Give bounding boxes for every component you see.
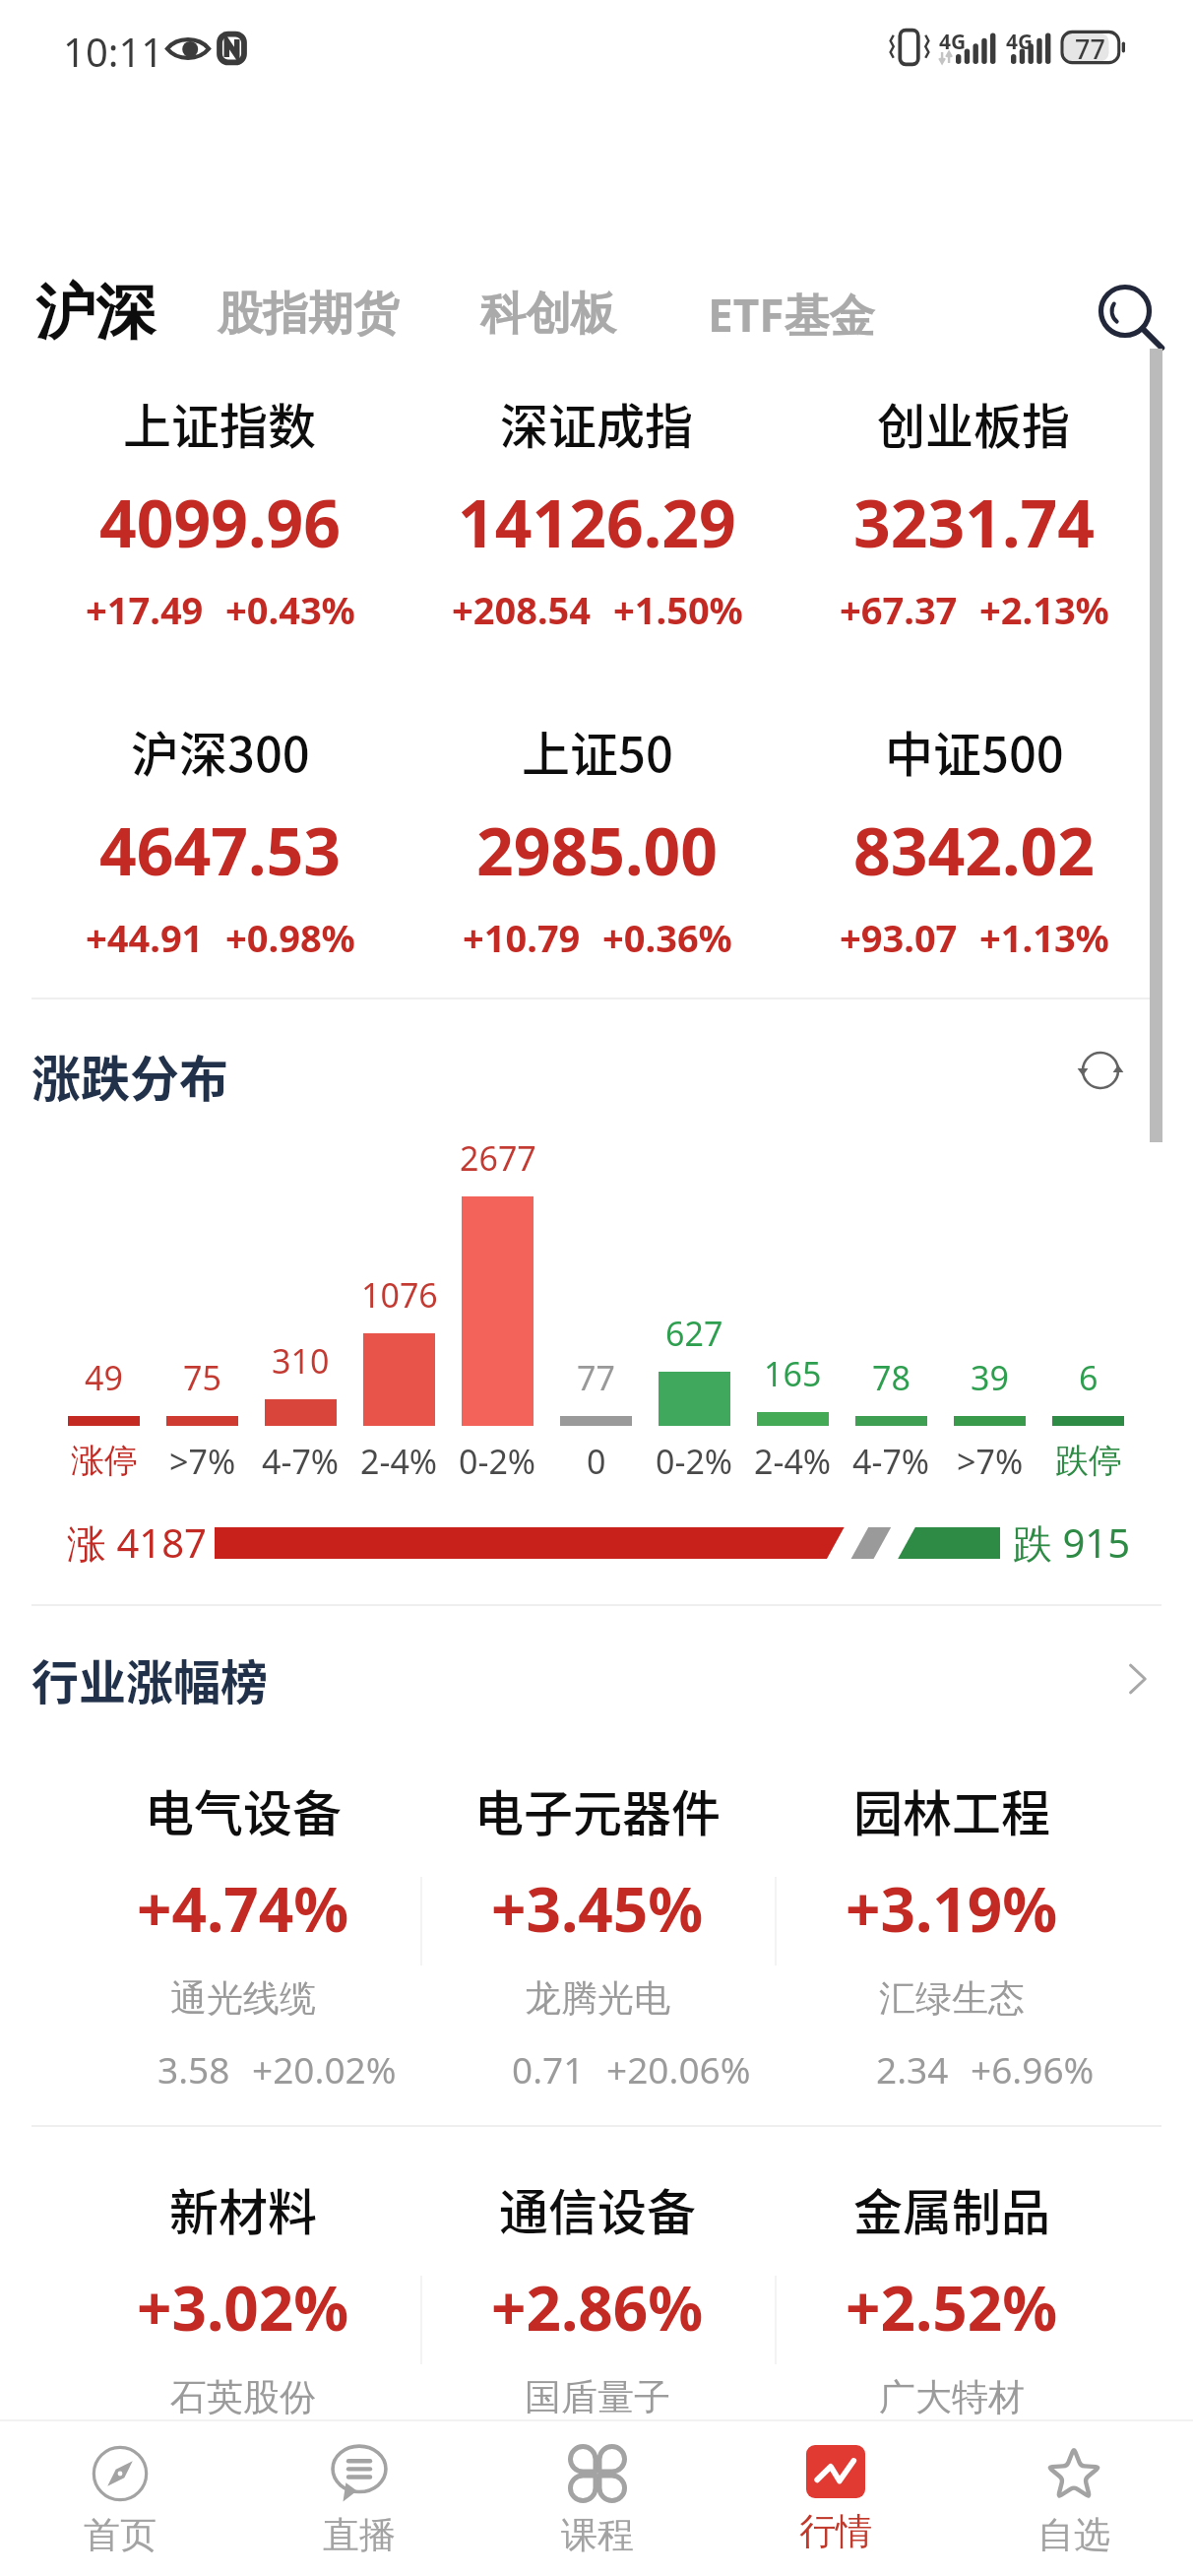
button[interactable]: 电气设备	[66, 1774, 420, 2022]
staticText: +67.37	[840, 584, 958, 635]
button[interactable]: 金属制品	[775, 2173, 1129, 2420]
staticText: 4-7%	[852, 1439, 930, 1482]
button[interactable]: 沪深	[5, 260, 185, 364]
button[interactable]: 直播	[239, 2421, 478, 2576]
button[interactable]: ETF基金	[682, 274, 901, 354]
staticText: 14126.29	[458, 478, 736, 566]
button[interactable]: 股指期货	[199, 274, 416, 354]
staticText: ETF基金	[708, 284, 875, 346]
staticText: 39	[971, 1355, 1009, 1396]
staticText: 上证50	[522, 716, 673, 786]
button[interactable]: 通信设备	[420, 2173, 775, 2420]
staticText: 4G	[939, 28, 967, 56]
staticText: 行情	[799, 2508, 872, 2554]
staticText: 科创板	[480, 286, 616, 343]
button[interactable]: 科创板	[460, 274, 636, 354]
staticText: +0.98%	[225, 912, 355, 963]
staticText: 0-2%	[459, 1439, 536, 1482]
staticText: +2.52%	[846, 2266, 1058, 2349]
staticText: +2.86%	[491, 2266, 704, 2349]
staticText: 上证指数	[123, 388, 317, 458]
staticText: 4099.96	[99, 478, 342, 566]
staticText: +1.50%	[613, 584, 743, 635]
staticText: 石英股份	[170, 2374, 316, 2420]
staticText: +0.36%	[602, 912, 732, 963]
staticText: +20.06%	[606, 2044, 751, 2093]
staticText: 0-2%	[656, 1439, 733, 1482]
staticText: +3.45%	[491, 1867, 704, 1950]
staticText: +4.74%	[137, 1867, 349, 1950]
staticText: 汇绿生态	[879, 1975, 1025, 2022]
staticText: 4G	[1006, 28, 1034, 56]
staticText: 涨停	[71, 1440, 138, 1482]
staticText: 2985.00	[476, 805, 719, 894]
staticText: 园林工程	[853, 1774, 1050, 1845]
staticText: 中证500	[885, 716, 1064, 786]
staticText: 10:11	[63, 25, 164, 78]
staticText: 627	[665, 1311, 723, 1352]
staticText: 77	[1075, 31, 1105, 64]
staticText: 国盾量子	[525, 2374, 670, 2420]
staticText: +208.54	[452, 584, 592, 635]
staticText: 涨 4187	[67, 1515, 207, 1569]
staticText: 78	[872, 1355, 910, 1396]
staticText: 165	[764, 1351, 822, 1392]
button[interactable]: 涨跌分布	[31, 1040, 228, 1111]
button[interactable]: Refresh	[1065, 1035, 1136, 1106]
staticText: 首页	[84, 2512, 157, 2558]
staticText: >7%	[169, 1439, 236, 1482]
staticText: 310	[272, 1338, 330, 1380]
staticText: 沪深	[35, 275, 156, 351]
staticText: +1.13%	[979, 912, 1109, 963]
staticText: 8342.02	[853, 805, 1096, 894]
staticText: 跌停	[1055, 1440, 1122, 1482]
staticText: 2-4%	[360, 1439, 438, 1482]
staticText: +3.02%	[137, 2266, 349, 2349]
button[interactable]: 上证50	[408, 716, 785, 963]
staticText: 75	[183, 1355, 221, 1396]
staticText: 电气设备	[145, 1774, 342, 1845]
button[interactable]: 电子元器件	[420, 1774, 775, 2022]
button[interactable]: 创业板指	[785, 388, 1162, 635]
staticText: 2677	[460, 1135, 536, 1177]
staticText: 2.34	[876, 2044, 949, 2093]
staticText: 行业涨幅榜	[31, 1644, 269, 1713]
staticText: 通信设备	[499, 2173, 696, 2244]
staticText: 1076	[361, 1272, 438, 1314]
button[interactable]: 园林工程	[775, 1774, 1129, 2022]
button[interactable]: 新材料	[66, 2173, 420, 2420]
staticText: 0.71	[512, 2044, 585, 2093]
staticText: 沪深300	[131, 716, 310, 786]
staticText: +6.96%	[971, 2044, 1095, 2093]
button[interactable]: 行业涨幅榜	[0, 1630, 1193, 1728]
staticText: 通光线缆	[170, 1975, 316, 2022]
button[interactable]: 首页	[0, 2421, 239, 2576]
button[interactable]: Search	[1081, 264, 1169, 353]
staticText: 3.58	[157, 2044, 230, 2093]
button[interactable]: 上证指数	[31, 388, 408, 635]
staticText: 创业板指	[877, 388, 1071, 458]
staticText: +2.13%	[979, 584, 1109, 635]
staticText: 6	[1079, 1355, 1099, 1396]
staticText: 77	[577, 1355, 615, 1396]
staticText: +20.02%	[252, 2044, 397, 2093]
staticText: 金属制品	[853, 2173, 1050, 2244]
staticText: +93.07	[840, 912, 958, 963]
staticText: +10.79	[463, 912, 581, 963]
staticText: 49	[85, 1355, 123, 1396]
staticText: +0.43%	[225, 584, 355, 635]
button[interactable]: 自选	[955, 2421, 1193, 2576]
button[interactable]: 课程	[478, 2421, 717, 2576]
staticText: 2-4%	[754, 1439, 832, 1482]
staticText: 新材料	[169, 2173, 317, 2244]
staticText: 龙腾光电	[525, 1975, 670, 2022]
staticText: 深证成指	[500, 388, 694, 458]
button[interactable]: 行情	[717, 2421, 955, 2576]
staticText: >7%	[957, 1439, 1024, 1482]
staticText: 课程	[561, 2512, 634, 2558]
button[interactable]: 中证500	[785, 716, 1162, 963]
button[interactable]: 沪深300	[31, 716, 408, 963]
staticText: +44.91	[86, 912, 204, 963]
staticText: 股指期货	[218, 286, 399, 343]
button[interactable]: 深证成指	[408, 388, 785, 635]
